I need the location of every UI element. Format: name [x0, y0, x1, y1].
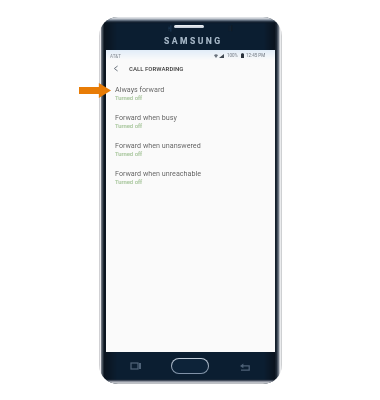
staticText: Turned off — [115, 179, 143, 186]
button[interactable]: Always forward — [106, 81, 275, 109]
staticText: 100% — [227, 53, 238, 58]
staticText: SAMSUNG — [164, 36, 223, 46]
staticText: Always forward — [115, 85, 165, 93]
staticText: Forward when busy — [115, 113, 177, 121]
button[interactable]: Navigate up — [108, 61, 124, 76]
staticText: Forward when unreachable — [115, 169, 201, 177]
staticText: 12:45 PM — [246, 53, 266, 58]
button[interactable]: Forward when busy — [106, 109, 275, 137]
button[interactable]: Recent apps — [126, 356, 146, 376]
staticText: Turned off — [115, 151, 143, 158]
button[interactable]: Forward when unreachable — [106, 165, 275, 193]
staticText: Turned off — [115, 95, 143, 102]
staticText: Forward when unanswered — [115, 141, 201, 149]
staticText: Turned off — [115, 123, 143, 130]
button[interactable]: Home — [171, 358, 209, 374]
staticText: AT&T — [110, 54, 121, 59]
button[interactable]: Forward when unanswered — [106, 137, 275, 165]
staticText: CALL FORWARDING — [129, 65, 184, 72]
button[interactable]: Back — [235, 357, 255, 377]
